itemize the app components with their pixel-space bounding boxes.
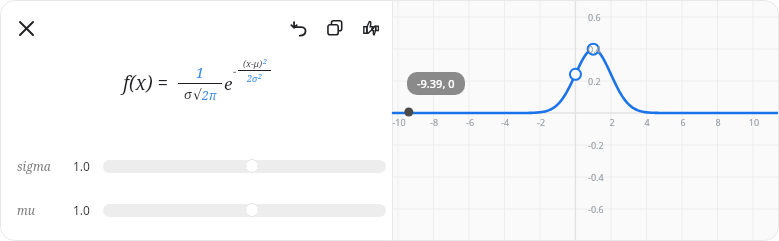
staticText: -0.4 [588, 171, 604, 183]
staticText: sigma [17, 158, 73, 174]
staticText: -2 [533, 116, 549, 128]
staticText: -0.2 [588, 139, 604, 151]
staticText: 10 [746, 116, 762, 128]
staticText: -8 [426, 116, 442, 128]
staticText: 0.6 [588, 11, 601, 23]
staticText: 2σ [247, 72, 258, 84]
button[interactable]: Feedback [356, 13, 386, 43]
staticText: 2π [202, 87, 217, 103]
staticText: -6 [462, 116, 478, 128]
staticText: f(x) = [123, 70, 169, 96]
staticText: 2 [604, 116, 620, 128]
staticText: 0.4 [588, 43, 601, 55]
staticText: 2 [258, 72, 262, 82]
button[interactable]: Close [11, 13, 41, 43]
staticText: √ [193, 87, 202, 103]
staticText: -0.6 [588, 203, 604, 215]
staticText: (x−μ) [243, 57, 263, 69]
staticText: -9.39, 0 [417, 76, 455, 91]
staticText: 8 [710, 116, 726, 128]
staticText: 6 [675, 116, 691, 128]
staticText: e [224, 72, 233, 95]
button[interactable]: Undo [284, 13, 314, 43]
staticText: 1 [196, 63, 204, 82]
staticText: 0.2 [588, 75, 601, 87]
staticText: 1.0 [73, 158, 103, 174]
staticText: 2 [263, 57, 267, 67]
button[interactable]: sigma [1, 152, 392, 180]
staticText: mu [17, 202, 73, 218]
button[interactable]: -9.39, 0 [407, 72, 465, 95]
staticText: 1.0 [73, 202, 103, 218]
staticText: − [233, 63, 237, 78]
staticText: -4 [497, 116, 513, 128]
staticText: -10 [391, 116, 407, 128]
staticText: 4 [639, 116, 655, 128]
button[interactable]: mu [1, 196, 392, 224]
staticText: σ [184, 85, 192, 103]
button[interactable]: Copy [320, 13, 350, 43]
